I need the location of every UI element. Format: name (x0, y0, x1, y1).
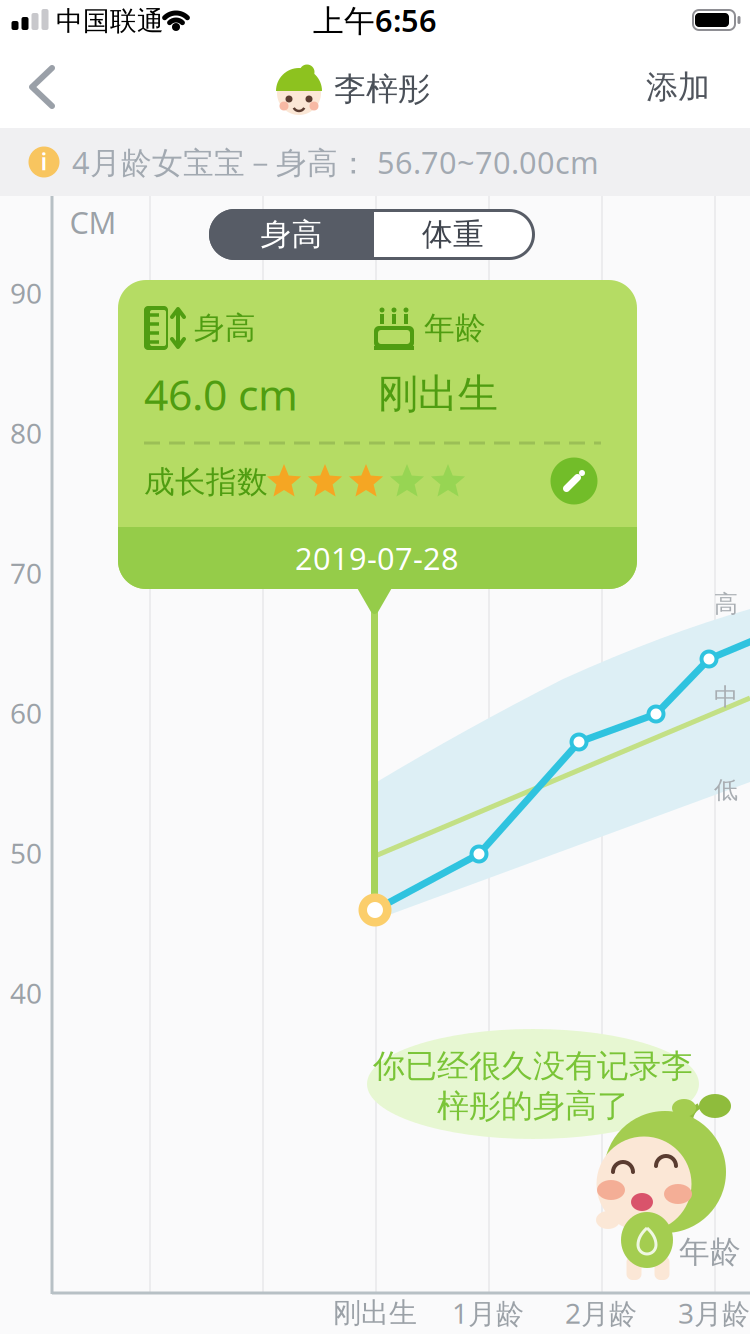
button[interactable]: 编辑记录 (550, 457, 597, 504)
staticText: 刚出生 (378, 369, 498, 418)
staticText: 梓彤的身高了 (437, 1086, 629, 1126)
staticText: 身高 (194, 309, 256, 347)
button[interactable]: 添加 (633, 59, 723, 115)
staticText: 年龄 (424, 309, 486, 347)
staticText: 4月龄女宝宝－身高： 56.70~70.00cm (72, 142, 599, 182)
staticText: 80 (10, 414, 42, 452)
staticText: CM (69, 202, 116, 242)
button[interactable]: 李梓彤 (274, 64, 434, 114)
staticText: i (40, 145, 47, 177)
staticText: 3月龄 (678, 1294, 750, 1332)
button[interactable]: 体重 (378, 209, 528, 260)
button[interactable]: 返回 (22, 64, 66, 110)
staticText: 70 (10, 554, 42, 592)
staticText: 高 (714, 589, 738, 619)
staticText: 2019-07-28 (295, 538, 459, 578)
staticText: 体重 (422, 216, 484, 253)
staticText: 低 (714, 775, 738, 805)
staticText: 40 (10, 974, 42, 1012)
staticText: 50 (10, 834, 42, 872)
staticText: 1月龄 (452, 1294, 524, 1332)
staticText: 60 (10, 694, 42, 732)
staticText: 成长指数 (144, 463, 268, 501)
staticText: 添加 (646, 67, 710, 107)
staticText: 上午6:56 (313, 0, 437, 40)
staticText: 90 (10, 274, 42, 312)
staticText: 年龄 (679, 1233, 741, 1271)
staticText: 46.0 cm (144, 366, 298, 422)
staticText: 中国联通 (56, 5, 164, 37)
staticText: 李梓彤 (334, 69, 430, 109)
button[interactable]: 身高 (209, 209, 374, 260)
staticText: 身高 (260, 216, 322, 253)
staticText: 中 (714, 682, 738, 712)
staticText: 2月龄 (565, 1294, 637, 1332)
staticText: 你已经很久没有记录李 (373, 1046, 693, 1086)
staticText: 刚出生 (333, 1296, 417, 1330)
